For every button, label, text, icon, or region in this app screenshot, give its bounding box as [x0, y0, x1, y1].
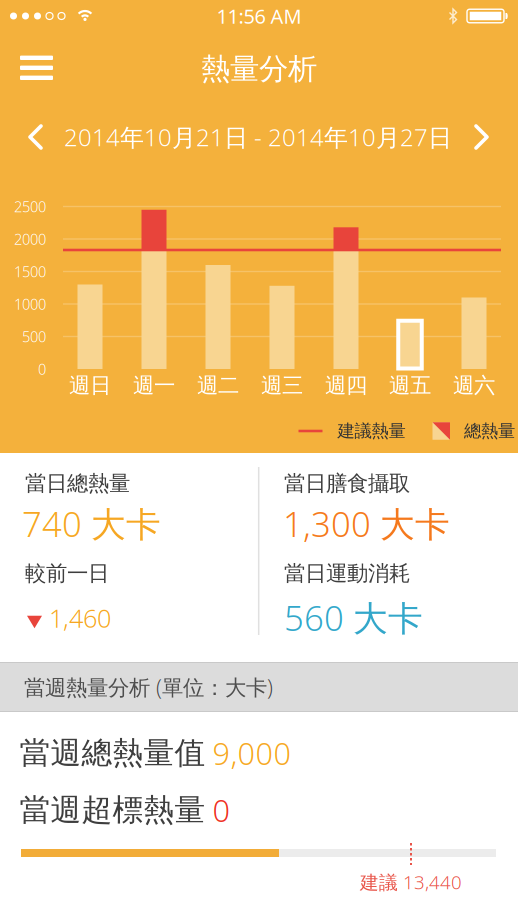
staticText: 週二	[197, 372, 239, 399]
staticText: 建議 13,440	[360, 870, 462, 894]
staticText: 較前一日	[25, 560, 109, 587]
staticText: 當週熱量分析 (單位：大卡)	[24, 673, 273, 701]
staticText: 週一	[133, 372, 175, 399]
button[interactable]: 2450 大卡	[141, 210, 166, 369]
button[interactable]: 2180 大卡	[333, 227, 358, 369]
staticText: 當週總熱量值	[19, 734, 205, 772]
staticText: 0	[212, 790, 230, 830]
staticText: 當日運動消耗	[284, 560, 410, 587]
staticText: 熱量分析	[201, 51, 317, 87]
button[interactable]: Previous week	[14, 116, 58, 158]
staticText: 週五	[389, 372, 431, 399]
staticText: 週日	[69, 372, 111, 399]
button[interactable]: Next week	[459, 116, 503, 158]
staticText: 當日膳食攝取	[284, 470, 410, 497]
staticText: 9,000	[212, 733, 291, 773]
staticText: 2500	[14, 197, 46, 216]
staticText: 11:56 AM	[216, 3, 301, 29]
staticText: 當週超標熱量	[19, 791, 205, 829]
staticText: 週四	[325, 372, 367, 399]
staticText: 1500	[14, 262, 46, 281]
staticText: 1000	[14, 294, 46, 314]
staticText: 560 大卡	[284, 594, 423, 640]
button[interactable]: 750 大卡	[396, 319, 424, 371]
staticText: 當日總熱量	[25, 470, 130, 497]
staticText: 週三	[261, 372, 303, 399]
staticText: 總熱量	[464, 420, 515, 442]
staticText: 1,460	[49, 601, 111, 635]
staticText: 0	[38, 359, 46, 379]
staticText: 建議熱量	[337, 420, 405, 442]
staticText: 2014年10月21日 - 2014年10月27日	[64, 121, 452, 153]
staticText: 740 大卡	[22, 500, 161, 546]
staticText: 500	[22, 327, 46, 346]
staticText: 週六	[453, 372, 495, 399]
button[interactable]: 1300 大卡	[77, 284, 102, 369]
staticText: 1,300 大卡	[283, 500, 450, 546]
staticText: 2000	[14, 229, 46, 249]
button[interactable]: Menu	[14, 46, 58, 90]
